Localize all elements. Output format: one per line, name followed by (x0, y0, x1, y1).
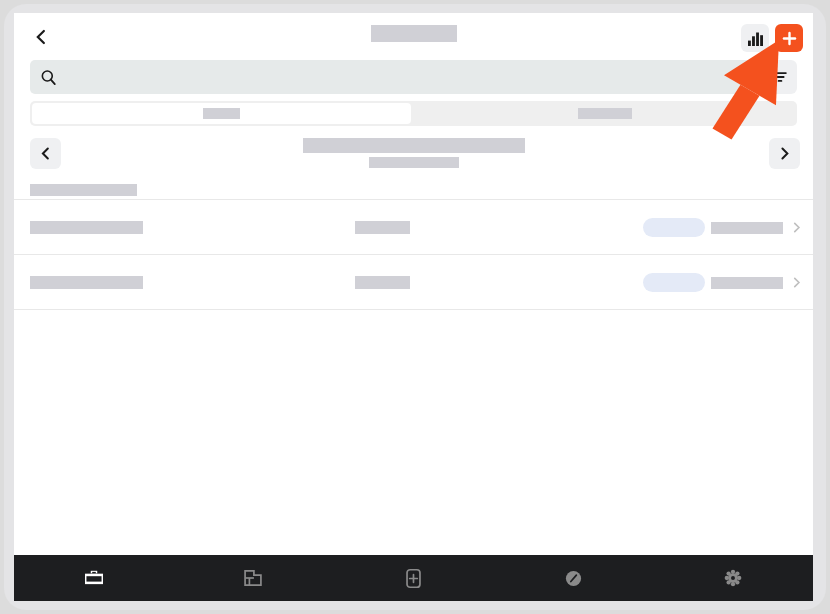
button[interactable] (14, 255, 813, 309)
button[interactable]: Dashboard (493, 555, 653, 601)
button[interactable]: Previous (30, 138, 61, 169)
button[interactable]: Plans (173, 555, 333, 601)
button[interactable] (30, 60, 756, 94)
button[interactable]: Next (769, 138, 800, 169)
button[interactable]: Create (333, 555, 493, 601)
button[interactable]: Back (24, 20, 58, 54)
button[interactable] (413, 101, 797, 126)
button[interactable] (14, 200, 813, 254)
button[interactable]: Filter (763, 60, 797, 94)
button[interactable] (32, 103, 411, 124)
button[interactable]: Add (775, 24, 803, 52)
button[interactable]: Settings (653, 555, 813, 601)
button[interactable]: Statistics (741, 24, 769, 52)
button[interactable]: Jobs (14, 555, 173, 601)
